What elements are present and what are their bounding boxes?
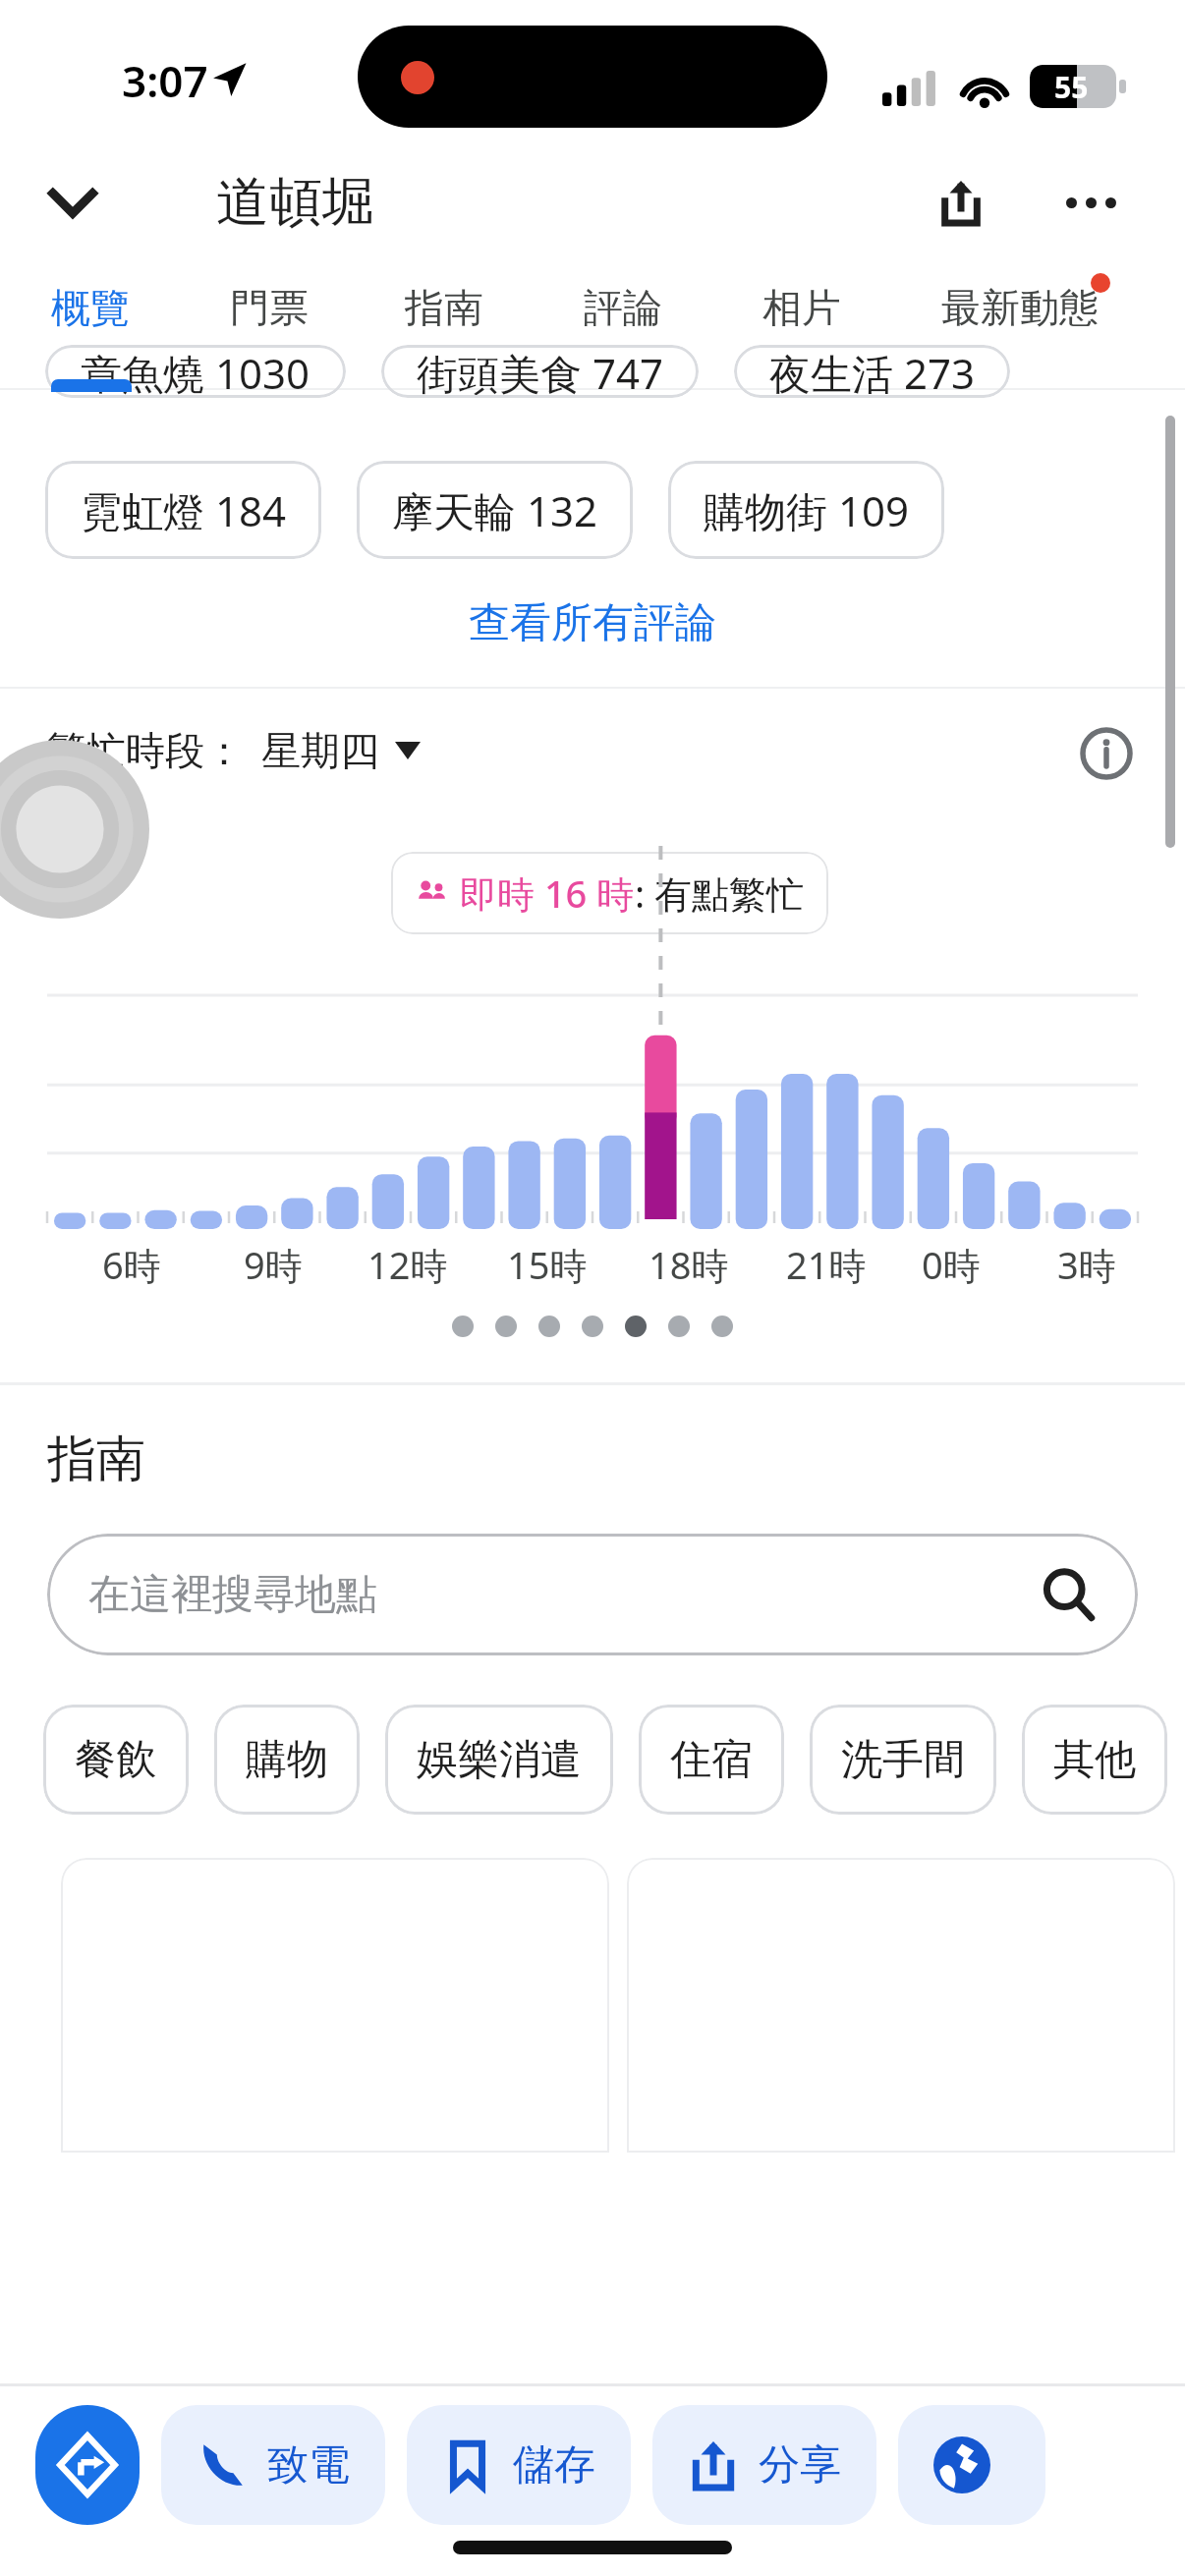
button[interactable]: Share (652, 2405, 876, 2525)
staticText: 道頓堀 (216, 169, 375, 236)
staticText: 概覽 (51, 283, 130, 332)
staticText: 購物街 109 (704, 482, 909, 538)
button[interactable]: Save (407, 2405, 631, 2525)
staticText: 街頭美食 747 (417, 345, 663, 398)
staticText: 6時 (102, 1239, 161, 1290)
button[interactable]: 購物街 109 (668, 461, 944, 559)
staticText: : 有點繁忙 (635, 868, 805, 919)
staticText: 儲存 (513, 2439, 595, 2492)
staticText: 3:07 (122, 51, 208, 110)
staticText: 住宿 (670, 1734, 753, 1786)
staticText: 3時 (1057, 1239, 1116, 1290)
staticText: 章魚燒 1030 (81, 345, 310, 398)
staticText: 0時 (922, 1239, 981, 1290)
staticText: 繁忙時段： (47, 726, 244, 775)
button[interactable]: Page 7 (711, 1316, 733, 1337)
button[interactable]: 摩天輪 132 (357, 461, 633, 559)
staticText: 指南 (405, 283, 483, 332)
button[interactable]: 霓虹燈 184 (45, 461, 321, 559)
button[interactable]: 其他 (1022, 1705, 1167, 1815)
staticText: 即時 16 時 (460, 868, 635, 919)
button[interactable]: Page 4 (582, 1316, 603, 1337)
staticText: 門票 (230, 283, 309, 332)
button[interactable]: 評論 (584, 265, 662, 388)
staticText: 購物 (246, 1734, 328, 1786)
button[interactable]: Collapse (28, 157, 118, 248)
button[interactable]: 相片 (762, 265, 841, 388)
button[interactable]: 指南 (405, 265, 483, 388)
staticText: 18時 (649, 1239, 729, 1290)
button[interactable]: Website (898, 2405, 1045, 2525)
staticText: 娛樂消遣 (417, 1734, 582, 1786)
button[interactable]: Page 1 (452, 1316, 474, 1337)
staticText: 相片 (762, 283, 841, 332)
button[interactable]: 在這裡搜尋地點 (47, 1534, 1138, 1655)
button[interactable]: Information (1069, 716, 1144, 791)
staticText: 查看所有評論 (469, 597, 716, 649)
button[interactable]: 門票 (230, 265, 309, 388)
button[interactable]: 娛樂消遣 (385, 1705, 613, 1815)
staticText: 指南 (47, 1428, 145, 1490)
button[interactable]: More options (1044, 155, 1138, 250)
staticText: 致電 (267, 2439, 350, 2492)
button[interactable]: Share (914, 155, 1008, 250)
button[interactable]: 查看所有評論 (0, 559, 1185, 687)
staticText: 霓虹燈 184 (81, 482, 286, 538)
staticText: 摩天輪 132 (392, 482, 597, 538)
staticText: 夜生活 273 (769, 345, 975, 398)
button[interactable]: 概覽 (51, 265, 130, 388)
staticText: 在這裡搜尋地點 (88, 1569, 377, 1621)
staticText: 評論 (584, 283, 662, 332)
staticText: 15時 (507, 1239, 588, 1290)
staticText: 12時 (367, 1239, 448, 1290)
button[interactable]: Page 3 (538, 1316, 560, 1337)
button[interactable]: Page 5 (625, 1316, 647, 1337)
button[interactable]: 餐飲 (43, 1705, 189, 1815)
button[interactable]: 街頭美食 747 (381, 345, 699, 398)
staticText: 餐飲 (75, 1734, 157, 1786)
button[interactable]: 最新動態 (941, 265, 1099, 388)
staticText: 分享 (759, 2439, 841, 2492)
staticText: 星期四 (261, 726, 379, 775)
button[interactable]: Page 2 (495, 1316, 517, 1337)
staticText: 21時 (786, 1239, 867, 1290)
button[interactable]: Directions (35, 2405, 140, 2525)
button[interactable]: 星期四 (261, 726, 421, 775)
button[interactable]: 住宿 (639, 1705, 784, 1815)
staticText: 55 (1054, 67, 1089, 107)
staticText: 其他 (1053, 1734, 1136, 1786)
staticText: 洗手間 (841, 1734, 965, 1786)
button[interactable]: Call (161, 2405, 385, 2525)
button[interactable]: Page 6 (668, 1316, 690, 1337)
staticText: 最新動態 (941, 283, 1099, 332)
staticText: 9時 (244, 1239, 303, 1290)
button[interactable]: 洗手間 (810, 1705, 996, 1815)
button[interactable]: 章魚燒 1030 (45, 345, 346, 398)
button[interactable]: 購物 (214, 1705, 360, 1815)
button[interactable]: 夜生活 273 (734, 345, 1010, 398)
